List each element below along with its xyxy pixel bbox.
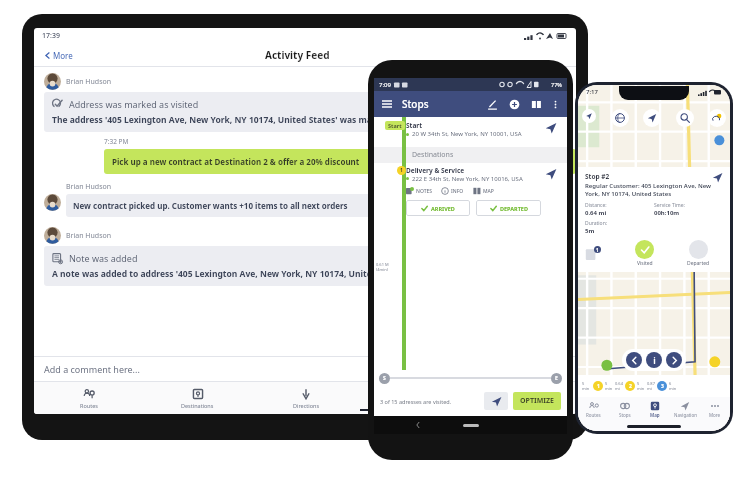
button[interactable]: Edit (485, 97, 499, 111)
staticText: Brian Hudson (66, 231, 112, 241)
staticText: Add a comment here... (44, 363, 140, 375)
button[interactable]: Info (646, 352, 662, 368)
staticText: Distance: (585, 202, 607, 209)
button[interactable]: New contract picked up. Customer wants +… (66, 194, 566, 217)
staticText: 0.61 M (4min) (376, 262, 389, 272)
button[interactable]: Navigate (545, 122, 567, 134)
button[interactable]: DEPARTED (476, 200, 541, 216)
staticText: 7:32 PM (104, 137, 129, 146)
staticText: INFO (451, 188, 464, 195)
button[interactable]: Map (529, 97, 543, 111)
button[interactable]: Navigate (545, 168, 567, 180)
button[interactable]: Navigate (484, 392, 508, 410)
staticText: New contract picked up. Customer wants +… (73, 200, 348, 211)
staticText: NOTES (416, 188, 432, 195)
staticText: Routes (586, 412, 601, 418)
staticText: 1 (597, 383, 600, 390)
staticText: 7:09 (379, 81, 391, 89)
staticText: Destinations (181, 402, 214, 409)
staticText: Start (406, 121, 423, 130)
staticText: 2 (629, 383, 632, 390)
button[interactable]: Visited (635, 240, 654, 267)
staticText: 5m (585, 227, 595, 235)
button[interactable]: 2 (625, 381, 635, 391)
staticText: 5 min (582, 381, 590, 391)
button[interactable]: INFO (441, 187, 464, 195)
button[interactable]: Search (676, 109, 694, 127)
staticText: The address '405 Lexington Ave, New York… (52, 114, 522, 126)
staticText: Start (388, 122, 402, 129)
button[interactable]: More (42, 48, 75, 63)
staticText: Destinations (412, 150, 454, 160)
button[interactable]: Compass (582, 109, 596, 123)
staticText: Pick up a new contract at Destination 2 … (112, 156, 360, 167)
button[interactable]: Stops (609, 397, 640, 431)
button[interactable]: Add (507, 97, 521, 111)
staticText: Navigation (674, 412, 697, 418)
button[interactable]: Map (640, 397, 670, 431)
staticText: Stops (619, 412, 631, 418)
staticText: 0.64 mi (615, 381, 623, 391)
button[interactable]: Previous (626, 352, 642, 368)
other: Navigate (712, 172, 723, 183)
button[interactable]: Notes (585, 246, 601, 262)
staticText: Map (650, 412, 660, 418)
staticText: 3 of 15 adresses are visited. (380, 398, 452, 405)
staticText: GPS Tracking (505, 402, 539, 409)
button[interactable]: GPS Tracking (468, 382, 576, 414)
staticText: More (709, 412, 721, 418)
staticText: 1 (400, 167, 403, 174)
staticText: More (53, 50, 73, 61)
staticText: 6 min (669, 381, 677, 391)
staticText: 00h:10m (654, 209, 680, 217)
button[interactable]: Departed (687, 240, 710, 267)
staticText: Brian Hudson (66, 182, 112, 192)
button[interactable]: NOTES (406, 187, 432, 195)
button[interactable]: Menu (380, 97, 394, 111)
staticText: MAP (483, 188, 494, 195)
button[interactable]: 3 (657, 381, 667, 391)
button[interactable]: Add a comment here... (34, 357, 576, 381)
button[interactable]: MAP (473, 187, 494, 195)
button[interactable]: Routes (34, 382, 143, 414)
button[interactable]: 1 (593, 381, 603, 391)
staticText: Departed (687, 260, 710, 267)
button[interactable]: Directions (252, 382, 360, 414)
button[interactable]: Traffic (611, 109, 629, 127)
staticText: 20 W 34th St, New York, NY 10001, USA (412, 130, 522, 138)
staticText: Delivery & Service (406, 166, 465, 175)
button[interactable]: More options (549, 98, 561, 110)
staticText: Activity Feed (265, 48, 330, 62)
staticText: 77% (551, 81, 562, 88)
button[interactable]: E (551, 373, 562, 384)
button[interactable]: Note was added (44, 246, 566, 286)
staticText: 3 (661, 383, 664, 390)
button[interactable]: ARRIVED (406, 200, 470, 216)
staticText: Stops (402, 97, 429, 111)
button[interactable]: Destinations (143, 382, 252, 414)
button[interactable]: More (700, 397, 730, 431)
staticText: Directions (293, 402, 320, 409)
button[interactable]: Navigation (360, 382, 468, 414)
staticText: E (555, 375, 558, 382)
staticText: 1 (596, 247, 599, 253)
staticText: Regular Customer: 405 Lexington Ave, New… (585, 182, 712, 198)
button[interactable]: My location (643, 109, 661, 127)
staticText: 222 E 34th St, New York, NY 10016, USA (412, 175, 523, 183)
staticText: Note was added (69, 252, 138, 264)
button[interactable]: Navigation (670, 397, 700, 431)
button[interactable]: Next (666, 352, 682, 368)
staticText: Address was marked as visited (69, 98, 199, 110)
staticText: ARRIVED (431, 205, 455, 212)
button[interactable]: Stop #2 (578, 167, 730, 272)
button[interactable]: Address was marked as visited (44, 92, 566, 132)
button[interactable]: Pick up a new contract at Destination 2 … (104, 149, 576, 174)
button[interactable]: S (379, 373, 390, 384)
button[interactable]: Routes (578, 397, 609, 431)
staticText: 7:17 (586, 88, 598, 96)
button[interactable]: OPTIMIZE (513, 392, 561, 410)
staticText: 5 min (605, 381, 613, 391)
staticText: A note was added to address '405 Lexingt… (52, 268, 496, 280)
button[interactable]: Weather (708, 109, 726, 127)
staticText: 0.64 mi (585, 209, 607, 217)
